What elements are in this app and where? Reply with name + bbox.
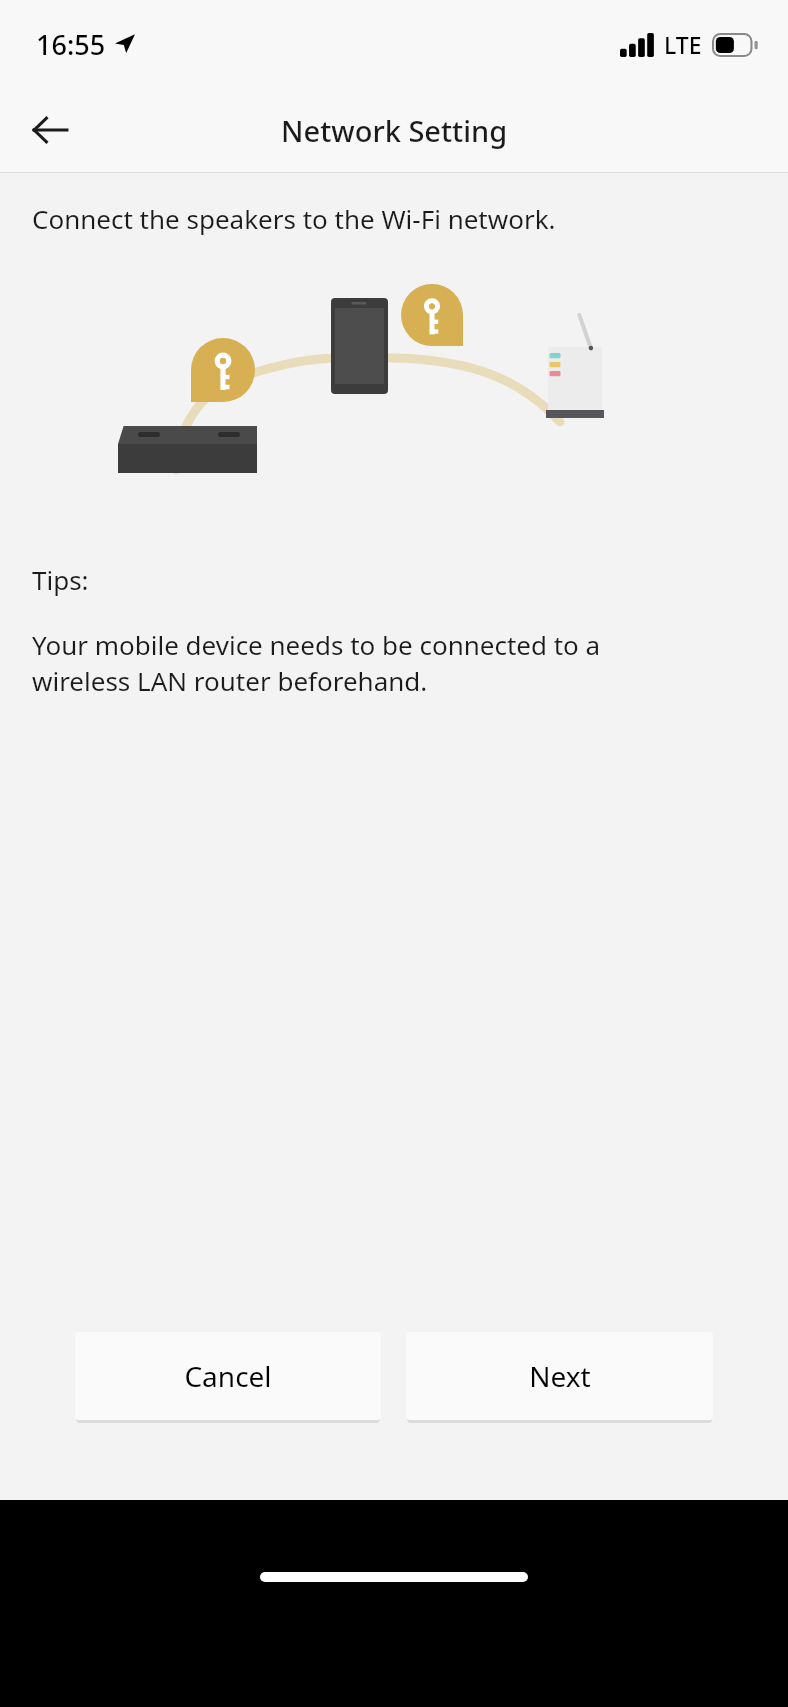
button[interactable]: Cancel xyxy=(75,1332,381,1420)
staticText: LTE xyxy=(664,29,702,60)
button[interactable]: Back xyxy=(20,100,80,160)
staticText: Tips: xyxy=(32,562,89,597)
staticText: Your mobile device needs to be connected… xyxy=(32,627,638,699)
staticText: Network Setting xyxy=(281,111,508,150)
staticText: Next xyxy=(529,1357,591,1395)
button[interactable]: Next xyxy=(406,1332,713,1420)
staticText: 16:55 xyxy=(36,26,106,63)
staticText: Connect the speakers to the Wi-Fi networ… xyxy=(32,201,556,236)
staticText: Cancel xyxy=(184,1357,272,1395)
